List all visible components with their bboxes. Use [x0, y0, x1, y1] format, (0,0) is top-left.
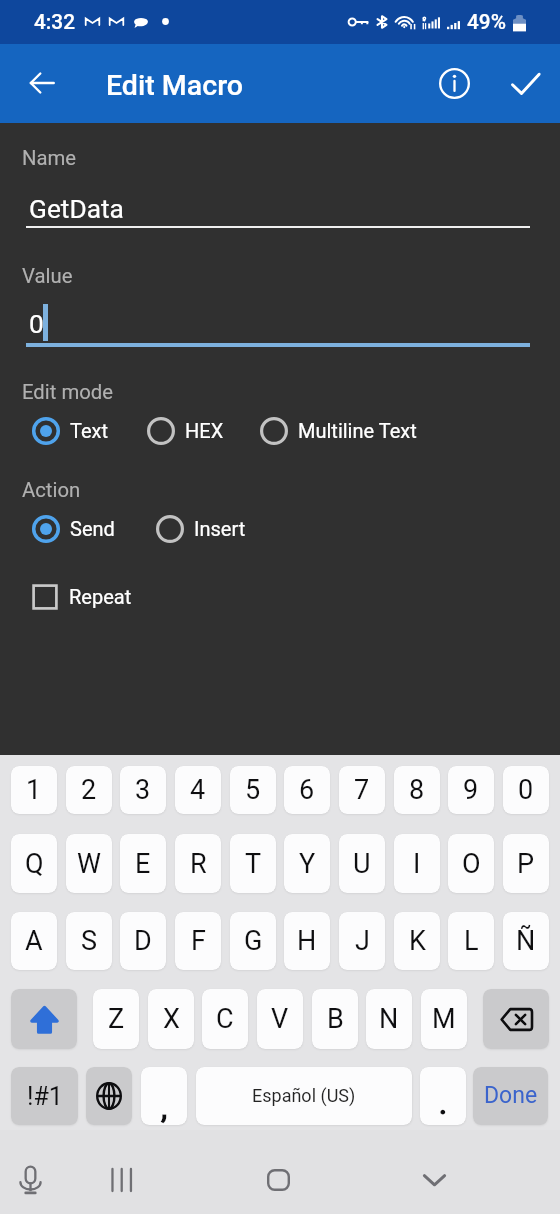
staticText: Español (US)	[252, 1085, 356, 1106]
staticText: C	[216, 1003, 234, 1035]
staticText: Name	[22, 146, 77, 170]
button[interactable]: Save	[499, 57, 551, 109]
staticText: 49%	[467, 10, 506, 34]
staticText: Edit mode	[22, 380, 113, 404]
staticText: W	[77, 848, 101, 880]
staticText: Y	[299, 848, 316, 880]
staticText: V	[271, 1003, 289, 1035]
staticText: Multiline Text	[298, 419, 417, 442]
staticText: T	[245, 848, 262, 880]
button[interactable]: Shift	[11, 989, 77, 1049]
button[interactable]: N	[366, 989, 412, 1049]
button[interactable]: 6	[284, 766, 330, 814]
staticText: H	[297, 925, 317, 957]
button[interactable]: Back	[18, 59, 66, 107]
staticText: L	[464, 925, 479, 957]
staticText: N	[379, 1003, 399, 1035]
staticText: D	[134, 925, 152, 957]
button[interactable]: F	[175, 912, 221, 970]
button[interactable]: Language	[86, 1067, 132, 1125]
staticText: 0	[29, 309, 44, 340]
button[interactable]: L	[448, 912, 494, 970]
button[interactable]: V	[257, 989, 303, 1049]
button[interactable]: G	[230, 912, 276, 970]
staticText: 4:32	[34, 10, 75, 34]
button[interactable]: Send	[30, 507, 115, 551]
button[interactable]: E	[120, 834, 166, 893]
button[interactable]: Period	[420, 1067, 466, 1125]
button[interactable]: X	[148, 989, 194, 1049]
staticText: R	[190, 848, 207, 880]
button[interactable]: 5	[230, 766, 276, 814]
button[interactable]: Insert	[154, 507, 246, 551]
button[interactable]: Multiline Text	[258, 409, 417, 453]
button[interactable]: J	[339, 912, 385, 970]
staticText: Send	[70, 517, 115, 540]
button[interactable]: Info	[428, 57, 480, 109]
button[interactable]: 4	[175, 766, 221, 814]
button[interactable]: HEX	[145, 409, 224, 453]
staticText: 5	[245, 774, 261, 806]
button[interactable]: 1	[11, 766, 57, 814]
staticText: U	[353, 848, 371, 880]
staticText: M	[432, 1003, 456, 1035]
button[interactable]: K	[394, 912, 440, 970]
button[interactable]: 7	[339, 766, 385, 814]
staticText: G	[244, 925, 263, 957]
button[interactable]: R	[175, 834, 221, 893]
button[interactable]: D	[120, 912, 166, 970]
staticText: 0	[518, 774, 534, 806]
button[interactable]: C	[202, 989, 248, 1049]
staticText: Edit Macro	[106, 69, 243, 102]
button[interactable]: Voice input	[7, 1157, 53, 1203]
staticText: Z	[108, 1003, 125, 1035]
staticText: Insert	[194, 517, 246, 540]
staticText: .	[439, 1088, 447, 1121]
button[interactable]: Done	[473, 1067, 548, 1125]
button[interactable]: A	[11, 912, 57, 970]
button[interactable]: S	[66, 912, 112, 970]
staticText: O	[462, 848, 481, 880]
staticText: P	[517, 848, 535, 880]
button[interactable]: 2	[66, 766, 112, 814]
button[interactable]: M	[421, 989, 467, 1049]
button[interactable]: 3	[120, 766, 166, 814]
staticText: I	[413, 848, 421, 880]
staticText: HEX	[185, 419, 224, 442]
staticText: 4	[190, 774, 206, 806]
staticText: !#1	[27, 1082, 63, 1111]
button[interactable]: Backspace	[483, 989, 549, 1049]
button[interactable]: H	[284, 912, 330, 970]
button[interactable]: Comma	[141, 1067, 187, 1125]
staticText: 3	[135, 774, 151, 806]
button[interactable]: Home	[255, 1157, 301, 1203]
staticText: 2	[81, 774, 97, 806]
button[interactable]: Ñ	[503, 912, 549, 970]
staticText: GetData	[29, 194, 124, 225]
button[interactable]: Q	[11, 834, 57, 893]
button[interactable]: Hide keyboard	[411, 1157, 457, 1203]
button[interactable]: Repeat	[30, 578, 132, 616]
button[interactable]: Text	[30, 409, 109, 453]
button[interactable]: Symbols	[11, 1067, 78, 1125]
button[interactable]: O	[448, 834, 494, 893]
button[interactable]: 9	[448, 766, 494, 814]
button[interactable]: 8	[394, 766, 440, 814]
staticText: Repeat	[69, 585, 132, 608]
button[interactable]: T	[230, 834, 276, 893]
staticText: K	[409, 925, 426, 957]
staticText: S	[81, 925, 98, 957]
button[interactable]: 0	[503, 766, 549, 814]
button[interactable]: U	[339, 834, 385, 893]
staticText: Ñ	[516, 925, 536, 957]
button[interactable]: Y	[284, 834, 330, 893]
button[interactable]: P	[503, 834, 549, 893]
staticText: F	[191, 925, 206, 957]
button[interactable]: I	[394, 834, 440, 893]
staticText: J	[355, 925, 370, 957]
button[interactable]: W	[66, 834, 112, 893]
button[interactable]: Space	[196, 1067, 412, 1125]
button[interactable]: Z	[93, 989, 139, 1049]
button[interactable]: B	[312, 989, 358, 1049]
button[interactable]: Recent apps	[98, 1157, 144, 1203]
